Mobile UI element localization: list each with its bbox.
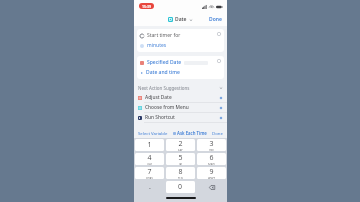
staticText: Choose from Menu [145,104,189,111]
other: Add Run Shortcut [219,116,223,120]
button[interactable]: Next Action Suggestions [134,83,227,93]
other: Action options [217,32,221,36]
staticText: 0 [178,182,183,192]
staticText: . [149,182,151,192]
staticText: 5 [178,153,183,163]
staticText: JKL [179,163,183,165]
staticText: ABC [178,149,183,151]
button[interactable]: 0 [166,181,195,193]
button[interactable]: Adjust Date [134,93,227,102]
button[interactable]: 5 [166,153,195,165]
staticText: minutes [147,42,167,49]
other: Action options [217,59,221,63]
staticText: TUV [178,177,183,179]
staticText: Ask Each Time [177,130,207,136]
button[interactable]: Select Variable [137,129,169,137]
staticText: Date and time [146,69,180,76]
button[interactable]: 6 [197,153,226,165]
button[interactable]: 9 [197,167,226,179]
staticText: Done [212,130,223,136]
button[interactable]: Done [211,129,224,137]
button[interactable]: Ask Each Time [172,129,208,137]
button[interactable]: Backspace [197,181,226,193]
staticText: Adjust Date [145,94,172,101]
button[interactable]: 7 [135,167,164,179]
staticText: Select Variable [138,130,168,136]
button[interactable]: Date [168,16,193,23]
button[interactable]: . [135,181,164,193]
button[interactable]: Choose from Menu [134,103,227,112]
staticText: WXYZ [208,177,215,179]
button[interactable]: 2 [166,139,195,151]
button[interactable]: 3 [197,139,226,151]
button[interactable]: Run Shortcut [134,113,227,122]
staticText: 9 [209,167,214,177]
staticText: 7 [147,167,152,177]
button[interactable]: Start timer for [137,29,224,52]
button[interactable]: 4 [135,153,164,165]
button[interactable]: 8 [166,167,195,179]
other: Add Adjust Date [219,96,223,100]
staticText: PQRS [146,177,153,179]
staticText: 15:39 [142,4,151,9]
staticText: GHI [147,163,152,165]
staticText: 3 [209,139,214,149]
staticText: DEF [209,149,214,151]
staticText: Next Action Suggestions [138,85,190,91]
staticText: Start timer for [147,32,181,39]
staticText: 4 [147,153,152,163]
staticText: Date [175,16,187,23]
button[interactable]: 1 [135,139,164,151]
button[interactable]: Specified Date [137,56,224,79]
other: Add Choose from Menu [219,106,223,110]
staticText: 8 [178,167,183,177]
staticText: Specified Date [147,59,182,66]
staticText: 1 [147,140,152,150]
staticText: MNO [208,163,215,165]
button[interactable]: Done [208,15,223,24]
staticText: 2 [178,139,183,149]
staticText: 6 [209,153,214,163]
staticText: Done [209,16,222,23]
staticText: Run Shortcut [145,114,175,121]
